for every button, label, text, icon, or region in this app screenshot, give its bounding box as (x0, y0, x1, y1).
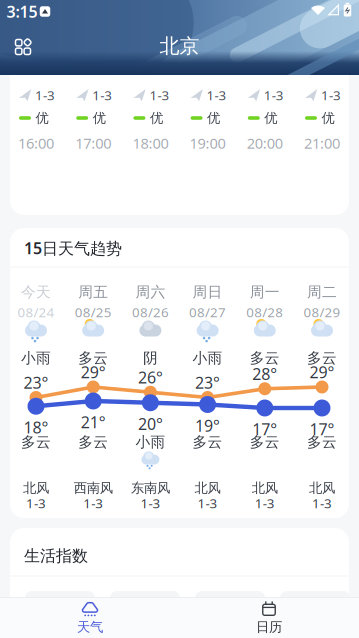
staticText: 周二 (307, 283, 337, 301)
staticText: 1-3 (149, 86, 169, 104)
staticText: 1-3 (264, 86, 284, 104)
staticText: 1-3 (198, 494, 218, 512)
staticText: 16:00 (18, 133, 54, 153)
staticText: 优 (264, 110, 277, 126)
staticText: 28° (252, 363, 277, 384)
staticText: 1-3 (83, 494, 103, 512)
staticText: 今天 (21, 283, 51, 301)
staticText: 1-3 (140, 494, 160, 512)
staticText: 3:15 (6, 1, 37, 22)
staticText: 日历 (256, 619, 282, 635)
staticText: 19:00 (190, 133, 226, 153)
staticText: 08/26 (132, 303, 169, 321)
staticText: 1-3 (312, 494, 332, 512)
staticText: 周五 (78, 283, 108, 301)
staticText: 17:00 (75, 133, 111, 153)
staticText: 多云 (307, 433, 337, 451)
staticText: 北风 (195, 480, 221, 496)
staticText: 优 (207, 110, 220, 126)
staticText: 1-3 (321, 86, 341, 104)
staticText: 23° (23, 372, 48, 393)
staticText: 08/28 (246, 303, 283, 321)
staticText: 生活指数 (24, 546, 88, 566)
staticText: 20:00 (247, 133, 283, 153)
staticText: 18:00 (132, 133, 168, 153)
staticText: 优 (150, 110, 163, 126)
staticText: 1-3 (26, 494, 46, 512)
staticText: 周日 (193, 283, 223, 301)
staticText: 23° (195, 372, 220, 393)
staticText: 20° (138, 413, 163, 434)
staticText: 多云 (193, 433, 223, 451)
staticText: 多云 (78, 349, 108, 367)
staticText: 阴 (143, 349, 158, 367)
staticText: 多云 (250, 433, 280, 451)
staticText: 多云 (307, 349, 337, 367)
staticText: 29° (81, 361, 106, 383)
staticText: 周一 (250, 283, 280, 301)
staticText: 西南风 (74, 480, 113, 496)
staticText: 29° (309, 361, 334, 383)
staticText: 08/27 (189, 303, 226, 321)
staticText: 21:00 (304, 133, 340, 153)
staticText: 18° (23, 417, 48, 438)
button[interactable]: 天气 (30, 597, 150, 638)
staticText: 15日天气趋势 (24, 237, 122, 259)
staticText: 北风 (252, 480, 278, 496)
staticText: 26° (138, 367, 163, 388)
staticText: 1-3 (92, 86, 112, 104)
staticText: 21° (81, 411, 106, 433)
staticText: 优 (321, 110, 334, 126)
staticText: 08/29 (303, 303, 340, 321)
button[interactable]: 北京 (159, 34, 199, 58)
staticText: 天气 (77, 619, 103, 635)
staticText: 多云 (250, 349, 280, 367)
staticText: 小雨 (193, 349, 223, 367)
staticText: 08/25 (75, 303, 112, 321)
button[interactable]: 城市管理 (14, 38, 32, 56)
staticText: 东南风 (131, 480, 170, 496)
staticText: 17° (309, 418, 334, 440)
staticText: 北京 (159, 34, 199, 58)
staticText: 小雨 (21, 349, 51, 367)
staticText: 北风 (23, 480, 49, 496)
staticText: 多云 (78, 433, 108, 451)
staticText: 周六 (135, 283, 165, 301)
staticText: 19° (195, 415, 220, 436)
button[interactable]: 日历 (209, 597, 329, 638)
staticText: 北风 (309, 480, 335, 496)
staticText: 多云 (21, 433, 51, 451)
staticText: 优 (35, 110, 48, 126)
staticText: 小雨 (135, 433, 165, 451)
staticText: 08/24 (17, 303, 54, 321)
staticText: 1-3 (35, 86, 55, 104)
staticText: 17° (252, 418, 277, 440)
staticText: 1-3 (207, 86, 227, 104)
staticText: 优 (93, 110, 106, 126)
staticText: 1-3 (255, 494, 275, 512)
